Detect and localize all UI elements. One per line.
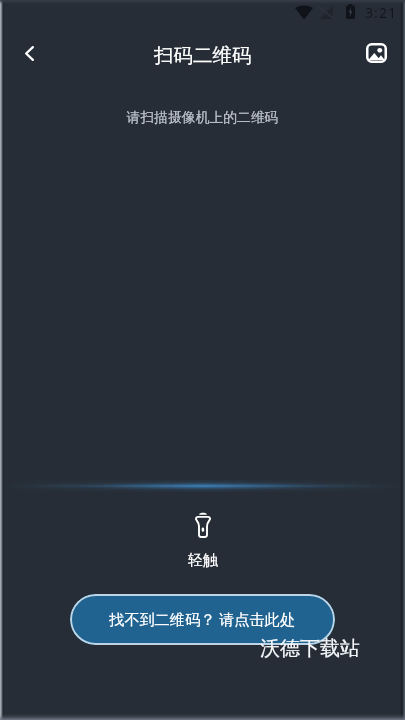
button[interactable]: Toggle flashlight <box>0 512 405 570</box>
staticText: 扫码二维码 <box>154 43 252 68</box>
button[interactable]: 找不到二维码？ 请点击此处 <box>70 594 335 645</box>
button[interactable]: Back <box>5 29 53 77</box>
staticText: 3:21 <box>365 3 398 22</box>
staticText: 轻触 <box>188 551 218 570</box>
staticText: 沃德下载站 <box>260 636 360 661</box>
button[interactable]: Open gallery <box>352 29 400 77</box>
staticText: 请扫描摄像机上的二维码 <box>0 109 405 126</box>
staticText: 找不到二维码？ 请点击此处 <box>109 609 296 630</box>
